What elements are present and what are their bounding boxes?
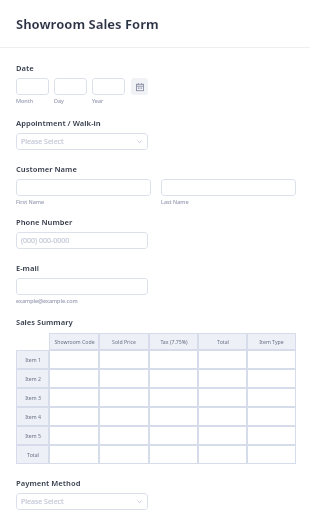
staticText: Last Name xyxy=(161,198,189,205)
staticText: Day xyxy=(54,97,64,104)
staticText: Item 5 xyxy=(25,432,41,439)
button[interactable] xyxy=(99,388,149,407)
button[interactable]: Open calendar picker xyxy=(131,78,148,95)
button[interactable] xyxy=(198,388,247,407)
staticText: Tax (7.75%) xyxy=(160,338,188,345)
button[interactable] xyxy=(198,369,247,388)
button[interactable] xyxy=(16,278,148,295)
staticText: Date xyxy=(16,63,34,73)
button[interactable] xyxy=(49,369,99,388)
button[interactable] xyxy=(149,407,198,426)
staticText: E-mail xyxy=(16,263,39,273)
button[interactable] xyxy=(99,350,149,369)
staticText: Appointment / Walk-in xyxy=(16,118,101,128)
button[interactable] xyxy=(49,388,99,407)
button[interactable] xyxy=(54,78,87,95)
staticText: Item Type xyxy=(259,338,284,345)
button[interactable] xyxy=(247,426,296,445)
staticText: Showroom Code xyxy=(54,338,95,345)
button[interactable] xyxy=(149,426,198,445)
button[interactable] xyxy=(99,407,149,426)
button[interactable] xyxy=(149,350,198,369)
button[interactable] xyxy=(247,369,296,388)
button[interactable]: Please Select xyxy=(16,493,148,510)
button[interactable] xyxy=(247,388,296,407)
button[interactable]: Please Select xyxy=(16,133,148,150)
button[interactable] xyxy=(149,445,198,464)
staticText: First Name xyxy=(16,198,45,205)
staticText: Phone Number xyxy=(16,217,73,227)
button[interactable] xyxy=(49,407,99,426)
staticText: Total xyxy=(27,451,39,458)
button[interactable] xyxy=(247,407,296,426)
staticText: Sold Price xyxy=(112,338,136,345)
staticText: Year xyxy=(92,97,104,104)
button[interactable] xyxy=(149,369,198,388)
button[interactable] xyxy=(49,426,99,445)
staticText: Item 2 xyxy=(25,375,41,382)
staticText: Item 3 xyxy=(25,394,41,401)
button[interactable] xyxy=(99,426,149,445)
staticText: Item 1 xyxy=(25,356,41,363)
button[interactable] xyxy=(49,350,99,369)
staticText: (000) 000-0000 xyxy=(21,236,70,246)
button[interactable] xyxy=(247,350,296,369)
staticText: Payment Method xyxy=(16,478,81,488)
staticText: Total xyxy=(217,338,229,345)
staticText: example@example.com xyxy=(16,297,78,304)
button[interactable] xyxy=(92,78,125,95)
button[interactable] xyxy=(198,350,247,369)
button[interactable] xyxy=(161,179,296,196)
staticText: Sales Summary xyxy=(16,317,73,327)
staticText: Item 4 xyxy=(25,413,41,420)
button[interactable] xyxy=(16,179,151,196)
button[interactable] xyxy=(99,445,149,464)
button[interactable] xyxy=(49,445,99,464)
button[interactable] xyxy=(149,388,198,407)
staticText: Showroom Sales Form xyxy=(16,15,159,33)
staticText: Month xyxy=(16,97,34,104)
button[interactable] xyxy=(99,369,149,388)
button[interactable]: (000) 000-0000 xyxy=(16,232,148,249)
button[interactable] xyxy=(16,78,49,95)
button[interactable] xyxy=(198,407,247,426)
staticText: Please Select xyxy=(21,497,64,507)
staticText: Customer Name xyxy=(16,164,77,174)
button[interactable] xyxy=(198,445,247,464)
button[interactable] xyxy=(198,426,247,445)
staticText: Please Select xyxy=(21,137,64,147)
button[interactable] xyxy=(247,445,296,464)
